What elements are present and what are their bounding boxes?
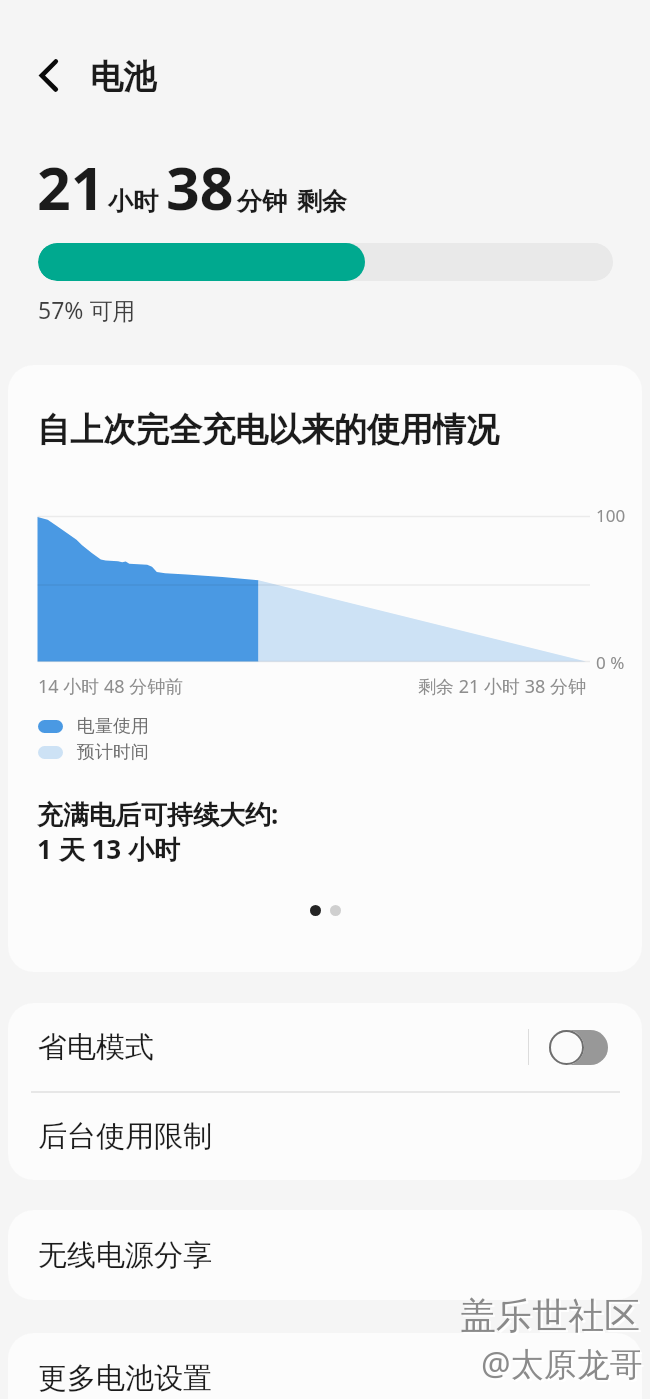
staticText: 1 天 13 小时 [37, 831, 180, 867]
staticText: @太原龙哥 [481, 1341, 643, 1386]
staticText: 无线电源分享 [38, 1237, 212, 1274]
staticText: 自上次完全充电以来的使用情况 [37, 409, 499, 451]
staticText: 38 [166, 147, 234, 227]
staticText: 充满电后可持续大约: [37, 796, 279, 832]
staticText: 剩余 21 小时 38 分钟 [418, 674, 586, 699]
staticText: 盖乐世社区 [462, 1295, 642, 1340]
staticText: 省电模式 [38, 1029, 154, 1066]
staticText: 57% 可用 [38, 294, 136, 325]
staticText: 盖乐世社区 [460, 1293, 640, 1338]
staticText: 更多电池设置 [38, 1360, 212, 1397]
staticText: 分钟 [237, 186, 287, 217]
staticText: 14 小时 48 分钟前 [38, 674, 184, 699]
staticText: 电量使用 [77, 715, 149, 738]
button[interactable]: 更多电池设置 [8, 1333, 642, 1399]
button[interactable]: Power saving mode toggle [549, 1030, 608, 1065]
button[interactable]: 省电模式 [8, 1003, 642, 1091]
staticText: 电池 [90, 56, 156, 98]
button[interactable]: 无线电源分享 [8, 1210, 642, 1300]
button[interactable]: 后台使用限制 [8, 1093, 642, 1180]
staticText: 后台使用限制 [38, 1118, 212, 1155]
staticText: 0 % [596, 651, 625, 674]
staticText: 21 [37, 147, 105, 227]
staticText: 100 [596, 504, 626, 527]
staticText: 小时 [108, 186, 158, 217]
staticText: 剩余 [297, 186, 347, 217]
staticText: 预计时间 [77, 741, 149, 764]
staticText: @太原龙哥 [483, 1343, 645, 1388]
button[interactable]: Back [24, 52, 72, 100]
